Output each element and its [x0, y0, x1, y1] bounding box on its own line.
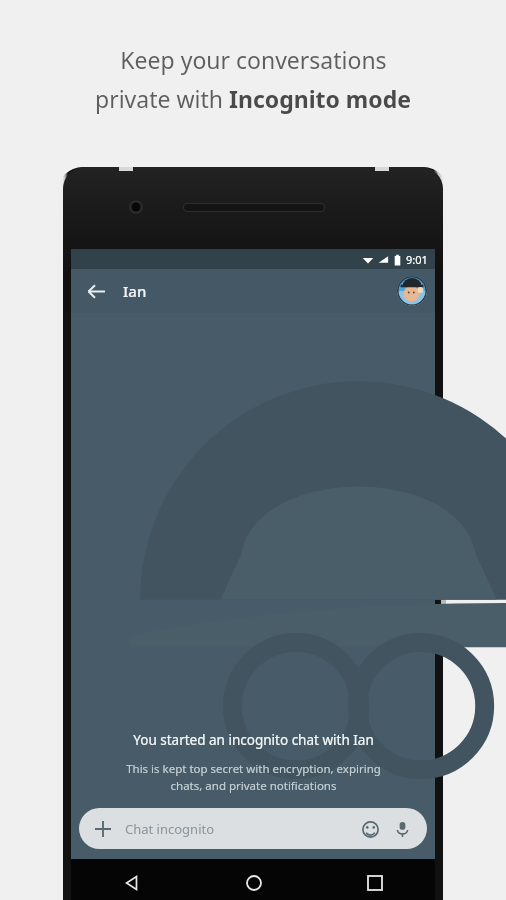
button[interactable]: Emoji — [357, 816, 383, 842]
staticText: Keep your conversations — [120, 44, 387, 75]
staticText: Chat incognito — [125, 820, 215, 838]
button[interactable]: Recent apps — [314, 859, 435, 900]
staticText: Incognito mode — [229, 83, 411, 114]
button[interactable]: Profile photo — [397, 276, 427, 306]
staticText: This is kept top secret with encryption,… — [126, 761, 381, 794]
staticText: private with — [95, 83, 229, 114]
staticText: Ian — [123, 281, 147, 301]
staticText: 9:01 — [406, 252, 428, 267]
button[interactable]: Back — [71, 859, 193, 900]
button[interactable]: Back — [79, 274, 113, 308]
button[interactable]: Home — [193, 859, 314, 900]
button[interactable]: Voice message — [389, 816, 415, 842]
button[interactable]: Add attachment — [79, 808, 427, 849]
staticText: You started an incognito chat with Ian — [133, 731, 374, 749]
button[interactable]: Add attachment — [91, 817, 115, 841]
